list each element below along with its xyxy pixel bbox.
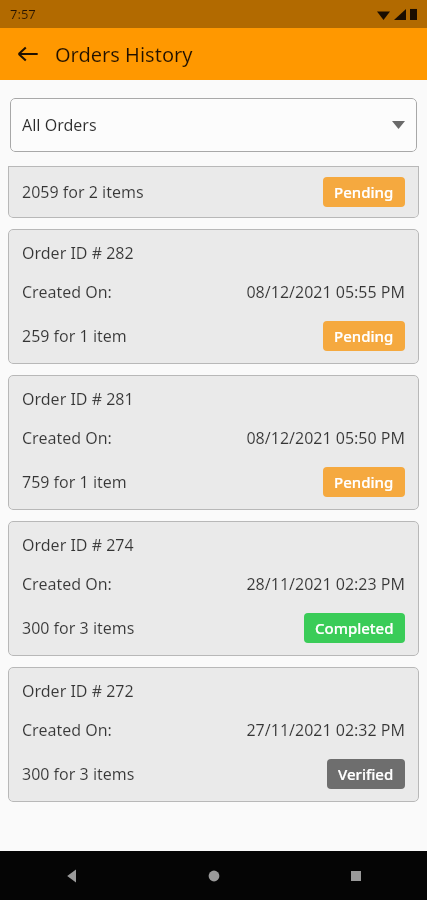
staticText: 300 for 3 items (22, 763, 327, 785)
button[interactable]: Pending (323, 177, 405, 207)
staticText: 759 for 1 item (22, 471, 323, 493)
staticText: Orders History (55, 41, 193, 68)
staticText: 259 for 1 item (22, 325, 323, 347)
staticText: Order ID # 272 (22, 680, 134, 702)
staticText: Order ID # 281 (22, 388, 134, 410)
button[interactable]: Back (8, 34, 48, 74)
staticText: 300 for 3 items (22, 617, 304, 639)
button[interactable]: Pending (323, 467, 405, 497)
staticText: Pending (334, 182, 394, 202)
staticText: Order ID # 274 (22, 534, 134, 556)
button[interactable]: Recent apps (285, 851, 427, 900)
staticText: Created On: (22, 719, 112, 741)
staticText: 08/12/2021 05:50 PM (112, 427, 405, 449)
staticText: 2059 for 2 items (22, 181, 323, 203)
button[interactable]: Back (0, 851, 143, 900)
staticText: 27/11/2021 02:32 PM (112, 719, 405, 741)
staticText: Order ID # 282 (22, 242, 134, 264)
staticText: 28/11/2021 02:23 PM (112, 573, 405, 595)
button[interactable]: Verified (327, 759, 405, 789)
button[interactable]: Completed (304, 613, 405, 643)
button[interactable]: Home (143, 851, 285, 900)
button[interactable]: Order ID # 282 (8, 229, 419, 364)
staticText: 7:57 (10, 5, 36, 23)
button[interactable]: Order ID # 272 (8, 667, 419, 802)
staticText: Created On: (22, 427, 112, 449)
staticText: Pending (334, 472, 394, 492)
button[interactable]: All Orders (10, 98, 417, 152)
staticText: All Orders (22, 114, 392, 136)
staticText: Verified (338, 764, 394, 784)
staticText: Completed (315, 618, 394, 638)
button[interactable]: 2059 for 2 items (8, 166, 419, 218)
button[interactable]: Pending (323, 321, 405, 351)
button[interactable]: Order ID # 274 (8, 521, 419, 656)
button[interactable]: Order ID # 281 (8, 375, 419, 510)
staticText: Created On: (22, 573, 112, 595)
staticText: Created On: (22, 281, 112, 303)
staticText: 08/12/2021 05:55 PM (112, 281, 405, 303)
staticText: Pending (334, 326, 394, 346)
